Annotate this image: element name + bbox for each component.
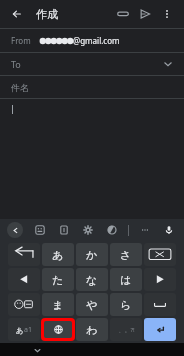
button[interactable]: た [42, 268, 74, 291]
staticText: ま [52, 298, 64, 312]
button[interactable]: Back [6, 3, 28, 25]
button[interactable]: More options [156, 3, 178, 25]
button[interactable]: Symbols and emoji [8, 293, 40, 316]
button[interactable]: Backspace [144, 243, 176, 266]
button[interactable]: 件名 [0, 76, 184, 98]
staticText: あ [16, 326, 24, 335]
button[interactable]: Settings [80, 222, 96, 238]
button[interactable]: は [110, 268, 142, 291]
button[interactable]: More [137, 222, 153, 238]
button[interactable]: Switch input language [44, 321, 72, 338]
button[interactable]: あ [42, 243, 74, 266]
button[interactable]: Undo [8, 243, 40, 266]
staticText: @gmail.com [73, 35, 120, 46]
staticText: わ [86, 323, 98, 337]
button[interactable]: Close toolbar [7, 222, 23, 238]
staticText: 件名 [11, 82, 29, 93]
button[interactable]: To [0, 53, 184, 75]
button[interactable]: さ [110, 243, 142, 266]
button[interactable]: Stickers [32, 222, 48, 238]
button[interactable]: Enter [144, 318, 176, 341]
button[interactable]: Cursor left [8, 268, 40, 291]
button[interactable]: Space [144, 293, 176, 316]
staticText: や [86, 298, 98, 312]
staticText: あ [52, 248, 64, 262]
staticText: a1 [24, 325, 32, 335]
button[interactable]: わ [76, 318, 108, 341]
button[interactable]: Themes [104, 222, 120, 238]
staticText: た [52, 273, 64, 287]
button[interactable]: Attach file [112, 3, 134, 25]
staticText: な [86, 273, 98, 287]
staticText: To [11, 58, 21, 70]
staticText: さ [120, 248, 132, 262]
staticText: か [86, 248, 98, 262]
button[interactable]: Hide keyboard [32, 345, 42, 355]
button[interactable]: 、。?! [110, 318, 142, 341]
staticText: From [11, 35, 31, 46]
button[interactable]: Voice input [161, 222, 177, 238]
button[interactable]: ら [110, 293, 142, 316]
staticText: ら [120, 298, 132, 312]
button[interactable]: Send [134, 3, 156, 25]
staticText: は [120, 273, 132, 287]
button[interactable]: Clipboard [56, 222, 72, 238]
button[interactable]: あ [8, 318, 40, 341]
button[interactable]: か [76, 243, 108, 266]
button[interactable]: ま [42, 293, 74, 316]
staticText: 、。?! [118, 326, 135, 334]
button[interactable]: や [76, 293, 108, 316]
button[interactable]: な [76, 268, 108, 291]
staticText: 作成 [36, 7, 58, 21]
button[interactable]: From [0, 29, 184, 52]
other: Expand recipients [163, 59, 173, 69]
button[interactable]: Cursor right [144, 268, 176, 291]
